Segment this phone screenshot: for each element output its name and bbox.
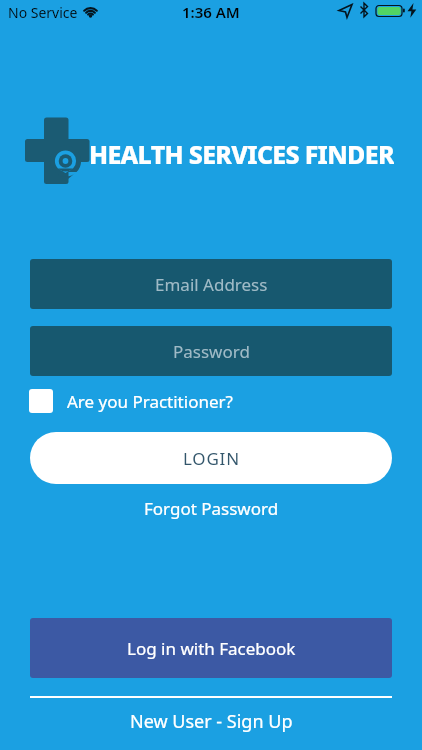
staticText: New User - Sign Up (130, 709, 293, 734)
staticText: Are you Practitioner? (67, 390, 233, 413)
button[interactable]: New User - Sign Up (130, 709, 293, 734)
staticText: HEALTH SERVICES FINDER (89, 137, 394, 167)
staticText: Forgot Password (144, 497, 279, 520)
button[interactable]: Password (30, 326, 392, 376)
button[interactable]: LOGIN (30, 432, 392, 484)
button[interactable]: Forgot Password (144, 497, 279, 520)
staticText: Password (173, 340, 250, 363)
staticText: 1:36 AM (182, 2, 240, 22)
button[interactable]: Email Address (30, 259, 392, 309)
staticText: Email Address (155, 273, 268, 296)
button[interactable]: Log in with Facebook (30, 618, 392, 678)
staticText: LOGIN (183, 447, 240, 470)
staticText: Log in with Facebook (127, 637, 296, 660)
button[interactable] (29, 389, 53, 413)
staticText: No Service (8, 3, 78, 22)
